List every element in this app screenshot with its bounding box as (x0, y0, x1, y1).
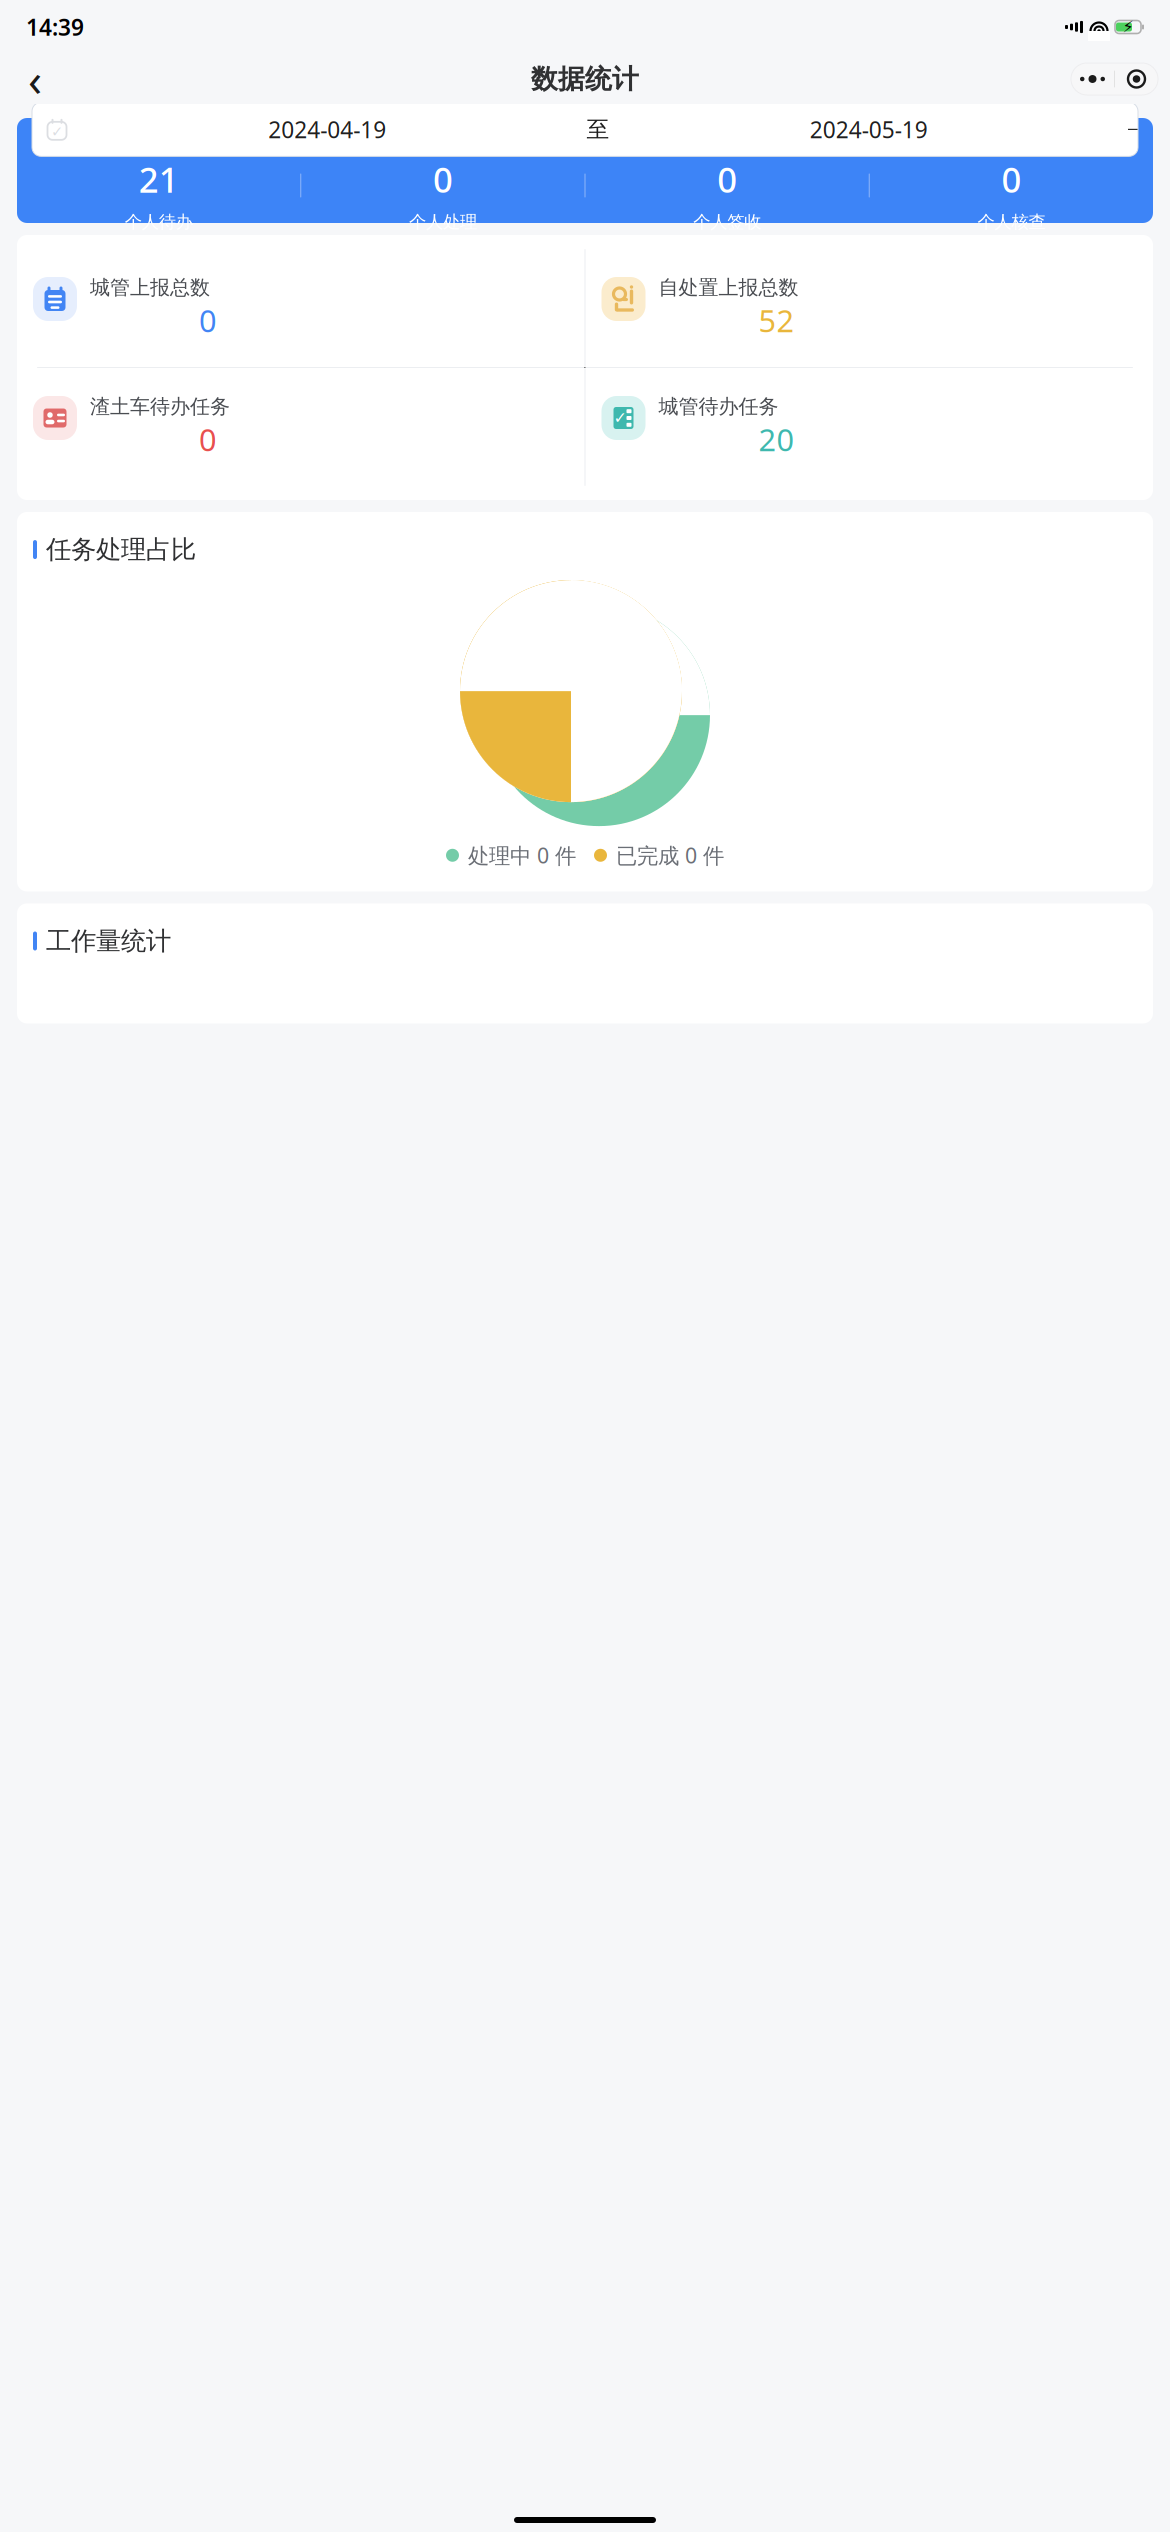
staticText: 已完成 0 件 (616, 841, 724, 869)
staticText: 52 (758, 300, 794, 341)
staticText: 0 (199, 419, 217, 460)
staticText: 城管上报总数 (90, 275, 210, 300)
staticText: ✓ (51, 123, 63, 140)
button[interactable]: 0 (870, 156, 1153, 233)
staticText: 14:39 (26, 12, 84, 42)
staticText: ✓ (613, 409, 626, 427)
staticText: 个人核查 (977, 211, 1045, 233)
staticText: 0 (433, 156, 453, 202)
staticText: 个人待办 (125, 211, 193, 233)
staticText: 处理中 0 件 (468, 841, 576, 869)
staticText: 数据统计 (531, 63, 639, 95)
button[interactable]: Close (1115, 63, 1158, 95)
staticText: 至 (586, 115, 609, 143)
staticText: 0 (199, 300, 217, 341)
staticText: ‹ (28, 49, 42, 109)
staticText: 0 (1001, 156, 1021, 202)
button[interactable]: ✓ (32, 102, 1138, 156)
staticText: 21 (139, 156, 179, 202)
button[interactable]: 0 (301, 156, 584, 233)
button[interactable]: More (1071, 63, 1114, 95)
button[interactable]: 自处置上报总数 (585, 264, 1153, 352)
staticText: 2024-04-19 (268, 114, 386, 144)
button[interactable]: ✓ (585, 383, 1153, 471)
button[interactable]: 0 (585, 156, 869, 233)
staticText: 工作量统计 (46, 925, 171, 956)
staticText: 20 (758, 419, 794, 460)
button[interactable]: 21 (17, 156, 300, 233)
staticText: ⚡︎ (1122, 18, 1133, 36)
staticText: 个人处理 (409, 211, 477, 233)
staticText: 2024-05-19 (810, 114, 928, 144)
staticText: 城管待办任务 (658, 394, 778, 419)
button[interactable]: Back (12, 56, 58, 102)
button[interactable]: 城管上报总数 (17, 264, 584, 352)
staticText: 渣土车待办任务 (90, 394, 230, 419)
staticText: 任务处理占比 (46, 534, 196, 565)
button[interactable]: 渣土车待办任务 (17, 383, 584, 471)
staticText: 自处置上报总数 (658, 275, 798, 300)
staticText: 个人签收 (693, 211, 761, 233)
staticText: 0 (717, 156, 737, 202)
